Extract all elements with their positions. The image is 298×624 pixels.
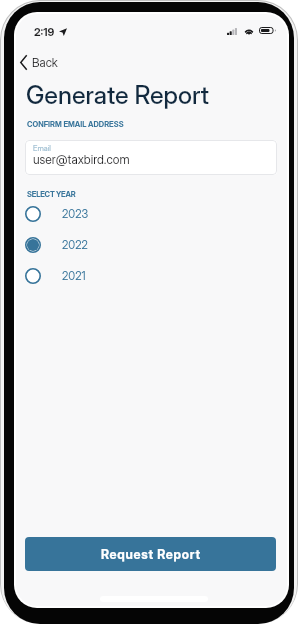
staticText: 2023 xyxy=(62,207,89,221)
button[interactable]: 2023 xyxy=(20,201,110,227)
button[interactable]: Request Report xyxy=(25,537,276,571)
button[interactable]: 2022 xyxy=(20,232,110,258)
staticText: user@taxbird.com xyxy=(33,152,130,167)
staticText: CONFIRM EMAIL ADDRESS xyxy=(27,120,124,129)
staticText: 2021 xyxy=(62,269,86,283)
staticText: Generate Report xyxy=(26,80,210,110)
button[interactable]: Back xyxy=(18,51,64,74)
staticText: Back xyxy=(32,56,58,70)
staticText: SELECT YEAR xyxy=(27,190,76,199)
staticText: Request Report xyxy=(101,547,201,562)
button[interactable]: Email xyxy=(25,140,277,175)
staticText: 2022 xyxy=(62,238,88,252)
staticText: 2:19 xyxy=(34,25,55,38)
button[interactable]: 2021 xyxy=(20,263,110,289)
staticText: Email xyxy=(33,144,51,153)
